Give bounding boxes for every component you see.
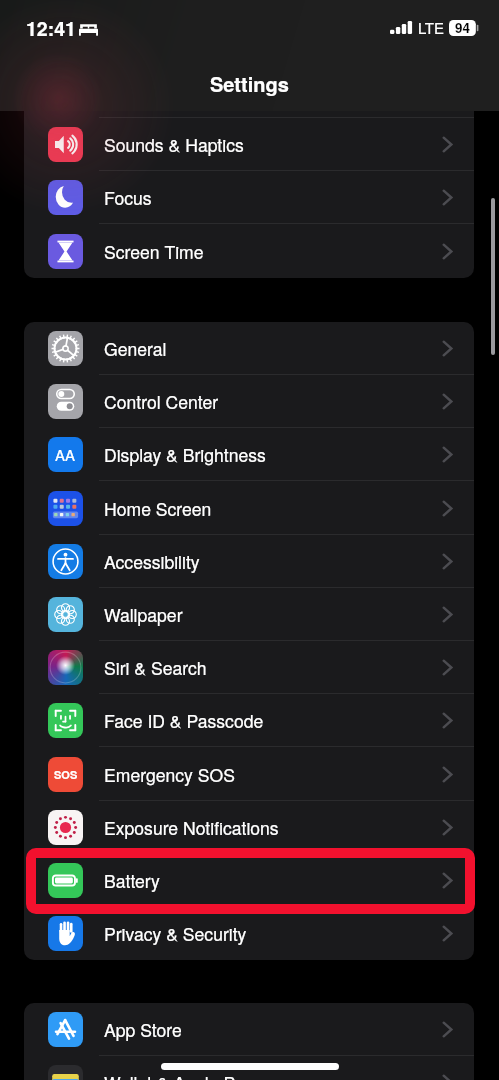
staticText: Battery (104, 868, 160, 893)
staticText: Privacy & Security (104, 921, 247, 946)
staticText: App Store (104, 1017, 182, 1042)
other: Sleep focus (79, 21, 98, 36)
staticText: AA (55, 444, 76, 465)
staticText: General (104, 336, 167, 361)
staticText: Focus (104, 185, 152, 210)
button[interactable]: Exposure Notifications (24, 801, 474, 854)
button[interactable]: General (24, 322, 474, 375)
button[interactable]: Privacy & Security (24, 907, 474, 960)
staticText: LTE (418, 17, 444, 38)
button[interactable]: Control Center (24, 375, 474, 428)
staticText: Control Center (104, 389, 219, 414)
staticText: Home Screen (104, 496, 212, 521)
staticText: 12:41 (26, 14, 76, 42)
button[interactable]: Accessibility (24, 535, 474, 588)
staticText: Face ID & Passcode (104, 708, 264, 733)
staticText: Exposure Notifications (104, 815, 279, 840)
staticText: Wallpaper (104, 602, 183, 627)
button[interactable]: App Store (24, 1003, 474, 1056)
other: Battery 94 percent (449, 20, 479, 36)
button[interactable]: Face ID & Passcode (24, 694, 474, 747)
button[interactable]: Focus (24, 171, 474, 224)
button[interactable]: AA (24, 428, 474, 481)
staticText: Emergency SOS (104, 762, 235, 787)
staticText: Display & Brightness (104, 442, 266, 467)
button[interactable]: SOS (24, 748, 474, 801)
button[interactable]: Wallet & Apple Pay (24, 1056, 474, 1080)
staticText: Settings (210, 69, 289, 98)
button[interactable]: Wallpaper (24, 588, 474, 641)
staticText: SOS (54, 767, 78, 783)
staticText: Wallet & Apple Pay (104, 1070, 253, 1080)
staticText: Screen Time (104, 239, 204, 264)
button[interactable]: Home Screen (24, 482, 474, 535)
staticText: 94 (455, 18, 471, 37)
staticText: Sounds & Haptics (104, 132, 244, 157)
other: Signal strength (390, 21, 412, 34)
button[interactable]: Sounds & Haptics (24, 118, 474, 171)
staticText: Accessibility (104, 549, 200, 574)
button[interactable]: Battery (24, 854, 474, 907)
button[interactable]: Screen Time (24, 225, 474, 278)
button[interactable]: Siri & Search (24, 641, 474, 694)
staticText: Siri & Search (104, 655, 207, 680)
